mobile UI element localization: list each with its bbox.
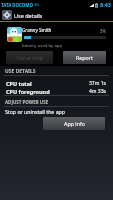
staticText: 3%	[88, 28, 106, 34]
staticText: 3G	[34, 2, 40, 7]
button[interactable]: Settings	[2, 10, 12, 20]
button[interactable]: Force stop	[6, 51, 53, 64]
staticText: battery used by app	[22, 42, 63, 48]
staticText: 4m 33s	[89, 88, 106, 95]
staticText: TATA DOCOMO	[1, 2, 33, 8]
staticText: Use details	[14, 12, 43, 19]
button[interactable]: CPU total	[6, 79, 106, 87]
staticText: 8:43	[100, 1, 111, 8]
button[interactable]: App info	[43, 117, 105, 130]
staticText: Force stop	[17, 54, 43, 61]
staticText: App info	[64, 120, 85, 127]
staticText: USE DETAILS	[5, 68, 36, 75]
button[interactable]: Report	[63, 51, 106, 64]
staticText: 37m 1s	[89, 80, 106, 87]
staticText: ADJUST POWER USE	[5, 99, 49, 105]
button[interactable]: CPU foreground	[6, 87, 106, 95]
staticText: Stop or uninstall the app	[5, 108, 65, 115]
staticText: CPU total	[6, 80, 32, 87]
staticText: Granny Smith	[22, 27, 52, 33]
staticText: Report	[76, 54, 93, 61]
staticText: CPU foreground	[6, 88, 50, 95]
button[interactable]: Stop or uninstall the app	[5, 107, 113, 115]
